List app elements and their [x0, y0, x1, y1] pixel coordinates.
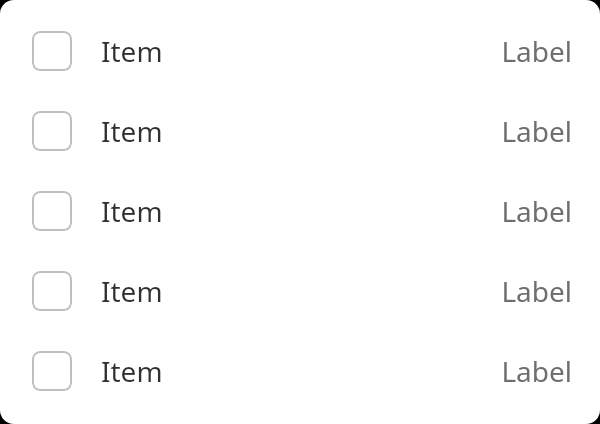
button[interactable]: Toggle item 2: [0, 91, 600, 171]
button[interactable]: Toggle item 4: [0, 251, 600, 331]
button[interactable]: Toggle item 5: [0, 331, 600, 411]
button[interactable]: Toggle item 1: [0, 11, 600, 91]
button[interactable]: Toggle item 1: [32, 31, 72, 71]
staticText: Label: [501, 112, 572, 150]
staticText: Label: [501, 192, 572, 230]
staticText: Label: [501, 272, 572, 310]
staticText: Item: [101, 32, 163, 70]
staticText: Item: [101, 192, 163, 230]
button[interactable]: Toggle item 4: [32, 271, 72, 311]
button[interactable]: Toggle item 2: [32, 111, 72, 151]
staticText: Item: [101, 112, 163, 150]
button[interactable]: Toggle item 3: [0, 171, 600, 251]
button[interactable]: Toggle item 5: [32, 351, 72, 391]
staticText: Item: [101, 272, 163, 310]
button[interactable]: Toggle item 3: [32, 191, 72, 231]
staticText: Label: [501, 32, 572, 70]
staticText: Label: [501, 352, 572, 390]
staticText: Item: [101, 352, 163, 390]
